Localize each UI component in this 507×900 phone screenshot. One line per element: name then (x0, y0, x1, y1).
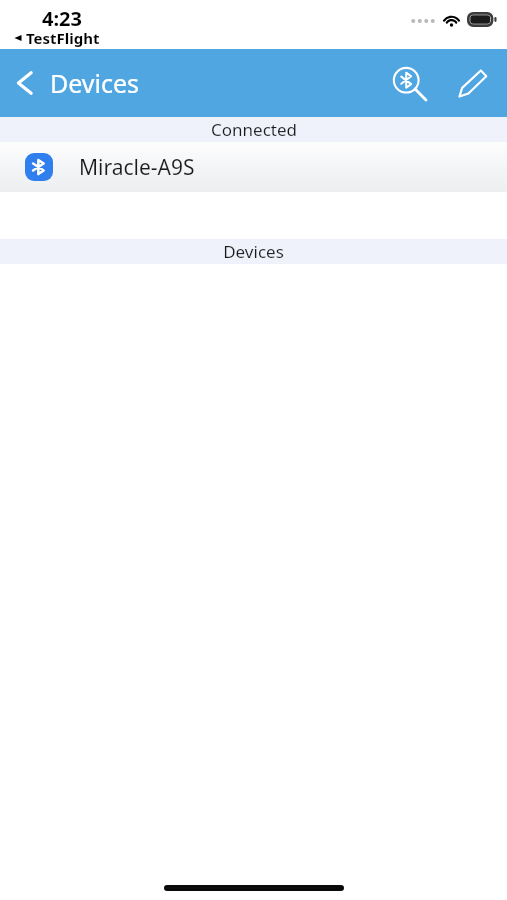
button[interactable]: Miracle-A9S (0, 142, 507, 192)
staticText: 4:23 (42, 5, 82, 32)
staticText: Devices (50, 66, 140, 100)
staticText: Devices (223, 240, 284, 263)
staticText: Miracle-A9S (79, 153, 195, 182)
button[interactable]: Edit (447, 59, 497, 109)
button[interactable]: Scan for Bluetooth devices (383, 57, 437, 111)
staticText: Connected (211, 118, 297, 141)
button[interactable]: Devices (0, 58, 150, 108)
staticText: TestFlight (26, 28, 100, 48)
